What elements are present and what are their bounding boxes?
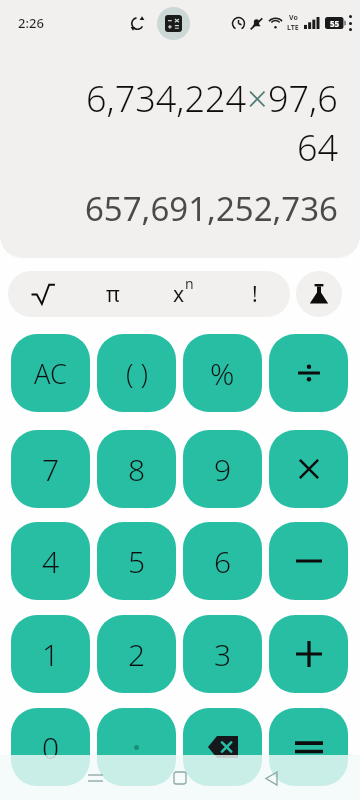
button[interactable]	[269, 615, 348, 693]
button[interactable]: AC	[11, 334, 90, 412]
button[interactable]: 8	[97, 430, 176, 508]
staticText: 97,6	[268, 74, 338, 123]
button[interactable]: ( )	[97, 334, 176, 412]
button[interactable]: 4	[11, 522, 90, 600]
button[interactable]: x	[148, 271, 219, 317]
staticText: 64	[296, 123, 338, 172]
staticText: n	[185, 274, 194, 293]
staticText: Vo	[289, 13, 298, 23]
button[interactable]	[269, 522, 348, 600]
staticText: !	[252, 280, 258, 309]
button[interactable]	[8, 271, 78, 317]
staticText: 55	[330, 18, 340, 29]
button[interactable]: 6	[183, 522, 262, 600]
staticText: 657,691,252,736	[84, 186, 338, 231]
staticText: 2	[128, 634, 146, 675]
staticText: 1	[42, 634, 60, 675]
staticText: %	[210, 353, 235, 394]
staticText: AC	[34, 355, 67, 392]
button[interactable]: Scientific mode	[296, 271, 342, 317]
button[interactable]: !	[219, 271, 290, 317]
staticText: 5	[128, 541, 146, 582]
staticText: 0	[42, 727, 60, 768]
button[interactable]: %	[183, 334, 262, 412]
button[interactable]: 2	[97, 615, 176, 693]
staticText: 2:26	[18, 14, 44, 32]
button[interactable]: Backspace	[183, 708, 262, 786]
staticText: 7	[42, 449, 60, 490]
staticText: x	[173, 280, 185, 309]
button[interactable]: Back	[254, 761, 288, 795]
button[interactable]	[269, 708, 348, 786]
button[interactable]: 3	[183, 615, 262, 693]
button[interactable]	[97, 708, 176, 786]
staticText: 9	[214, 449, 232, 490]
button[interactable]: 1	[11, 615, 90, 693]
button[interactable]: Recents	[78, 761, 112, 795]
staticText: π	[106, 280, 120, 309]
staticText: 3	[214, 634, 232, 675]
staticText: ( )	[126, 355, 148, 392]
button[interactable]: 0	[11, 708, 90, 786]
staticText: 6	[214, 541, 232, 582]
button[interactable]: 5	[97, 522, 176, 600]
button[interactable]: Home	[163, 761, 197, 795]
staticText: ×	[247, 74, 268, 123]
staticText: 4	[42, 541, 60, 582]
staticText: LTE	[287, 23, 299, 33]
button[interactable]	[269, 430, 348, 508]
staticText: 8	[128, 449, 146, 490]
staticText: 6,734,224	[86, 74, 247, 123]
button[interactable]: 9	[183, 430, 262, 508]
button[interactable]: π	[78, 271, 148, 317]
button[interactable]: 7	[11, 430, 90, 508]
button[interactable]	[269, 334, 348, 412]
